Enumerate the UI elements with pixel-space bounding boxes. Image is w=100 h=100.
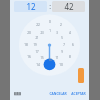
staticText: 12 [26, 1, 36, 12]
staticText: 13 [48, 58, 52, 62]
staticText: 5 [61, 36, 63, 40]
staticText: 15 [40, 56, 44, 60]
button[interactable]: CANCELAR [49, 88, 67, 98]
staticText: 22 [36, 23, 40, 27]
staticText: 0 [49, 20, 51, 24]
staticText: 19 [33, 43, 37, 47]
staticText: 11 [55, 56, 59, 60]
staticText: 1 [49, 29, 51, 33]
staticText: 10 [59, 63, 63, 67]
staticText: 16 [27, 55, 31, 59]
staticText: 42 [64, 1, 74, 12]
staticText: 7 [63, 43, 65, 47]
button[interactable]: Switch to keyboard input [13, 89, 22, 98]
staticText: 3 [56, 31, 58, 35]
staticText: 23 [40, 31, 44, 35]
staticText: 8 [69, 55, 71, 59]
staticText: 4 [69, 31, 71, 35]
button[interactable]: 42 [52, 1, 85, 12]
button[interactable]: ACEPTAR [71, 88, 86, 98]
staticText: 2 [60, 23, 62, 27]
staticText: 21 [35, 36, 39, 40]
staticText: 6 [72, 43, 74, 47]
staticText: : [49, 2, 51, 11]
staticText: ACEPTAR [71, 91, 86, 96]
staticText: 9 [61, 50, 63, 54]
button[interactable]: AM PM toggle [78, 68, 84, 83]
staticText: 14 [36, 63, 40, 67]
button[interactable]: 12 [14, 1, 47, 12]
staticText: 17 [35, 50, 39, 54]
staticText: CANCELAR [49, 91, 67, 96]
staticText: 20 [27, 31, 31, 35]
staticText: 18 [24, 43, 28, 47]
